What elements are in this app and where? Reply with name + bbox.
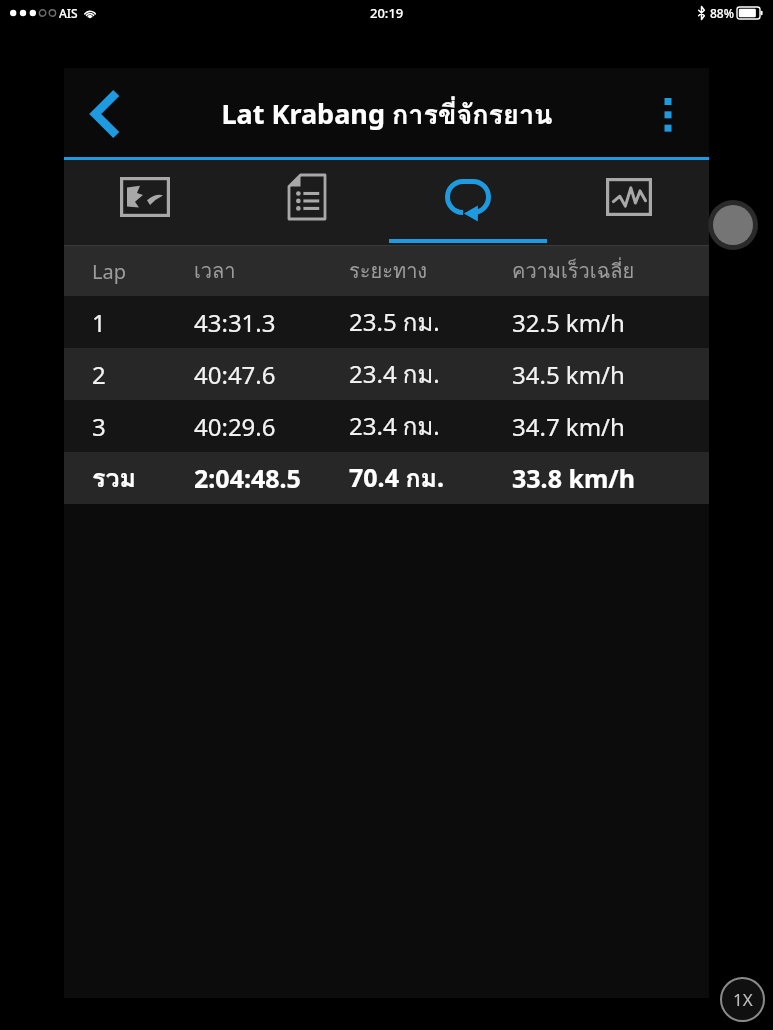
button[interactable]: Details [226,160,387,246]
staticText: 40:29.6 [194,410,276,443]
button[interactable]: 1 [64,296,709,348]
staticText: เวลา [194,255,236,287]
button[interactable]: Assistive touch [708,200,758,250]
button[interactable]: Map [64,160,226,246]
staticText: 2 [92,358,106,391]
staticText: ระยะทาง [349,255,428,287]
staticText: AIS [59,5,78,21]
staticText: 2:04:48.5 [194,461,301,495]
staticText: 43:31.3 [194,306,276,339]
button[interactable]: 2 [64,348,709,400]
staticText: 34.5 km/h [512,358,625,391]
staticText: 33.8 km/h [512,461,635,495]
staticText: 3 [92,410,106,443]
staticText: 70.4 กม. [349,458,445,498]
staticText: Lap [92,258,126,285]
staticText: 23.4 กม. [349,355,440,393]
staticText: 34.7 km/h [512,410,625,443]
button[interactable]: Back [72,82,136,146]
button[interactable]: Laps [387,160,548,246]
button[interactable]: More options [643,89,693,139]
staticText: 1X [733,988,753,1011]
staticText: 32.5 km/h [512,306,625,339]
staticText: Lat Krabang การขี่จักรยาน [221,93,553,136]
staticText: รวม [92,458,136,498]
staticText: 1 [92,306,106,339]
button[interactable]: 3 [64,400,709,452]
button[interactable]: รวม [64,452,709,504]
staticText: ความเร็วเฉลี่ย [512,255,635,287]
staticText: 88% [710,5,734,21]
staticText: 20:19 [370,4,404,22]
button[interactable]: Graphs [548,160,709,246]
staticText: 23.4 กม. [349,407,440,445]
staticText: 40:47.6 [194,358,276,391]
button[interactable]: Zoom 1X [720,977,765,1022]
staticText: 23.5 กม. [349,303,440,341]
